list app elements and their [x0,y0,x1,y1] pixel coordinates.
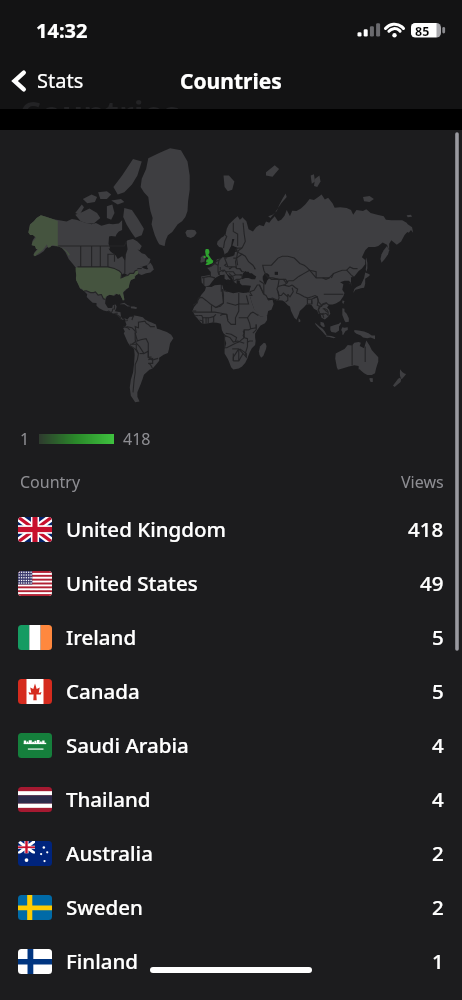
button[interactable]: United States [0,556,462,610]
staticText: 4 [432,785,444,813]
staticText: 5 [432,623,444,651]
staticText: Countries [20,90,180,109]
button[interactable]: Australia [0,826,462,880]
staticText: Country [20,471,81,493]
staticText: United Kingdom [66,515,226,543]
staticText: Saudi Arabia [66,731,189,759]
staticText: 418 [408,515,444,543]
other: Back [11,68,27,94]
button[interactable]: Ireland [0,610,462,664]
button[interactable]: Finland [0,934,462,988]
staticText: United States [66,569,198,597]
staticText: 2 [432,893,444,921]
staticText: 2 [432,839,444,867]
staticText: 418 [123,428,151,450]
staticText: 85 [415,23,430,40]
staticText: Thailand [66,785,151,813]
staticText: Stats [37,67,84,94]
staticText: 1 [20,428,30,450]
staticText: Canada [66,677,140,705]
staticText: Countries [180,67,282,96]
button[interactable]: United Kingdom [0,502,462,556]
staticText: Views [401,471,444,493]
button[interactable]: Thailand [0,772,462,826]
staticText: 4 [432,731,444,759]
staticText: 14:32 [36,17,88,44]
staticText: Sweden [66,893,143,921]
staticText: 5 [432,677,444,705]
staticText: 1 [432,947,444,975]
staticText: Ireland [66,623,137,651]
button[interactable]: Canada [0,664,462,718]
button[interactable]: Back [0,63,94,98]
staticText: Finland [66,947,139,975]
staticText: 49 [420,569,444,597]
staticText: Australia [66,839,153,867]
button[interactable]: Sweden [0,880,462,934]
button[interactable]: Saudi Arabia [0,718,462,772]
